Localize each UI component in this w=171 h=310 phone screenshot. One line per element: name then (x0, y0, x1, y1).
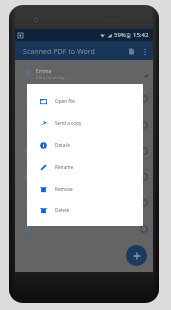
button[interactable]: Emma (15, 60, 153, 86)
staticText: Delete (55, 207, 70, 213)
staticText: Open file (55, 98, 75, 104)
staticText: 59% (114, 31, 126, 39)
button[interactable]: Details (27, 134, 143, 156)
button[interactable] (15, 112, 153, 138)
button[interactable]: Delete (27, 200, 143, 220)
button[interactable]: More options (138, 45, 151, 58)
staticText: Details (55, 142, 71, 148)
button[interactable]: Open file (27, 90, 143, 112)
staticText: Remove (55, 186, 73, 192)
staticText: Scanned PDF to Word (23, 46, 95, 56)
staticText: Emma (36, 67, 52, 74)
staticText: File is converting... (36, 75, 68, 80)
button[interactable]: My files (124, 44, 138, 58)
button[interactable] (15, 190, 153, 216)
button[interactable] (15, 164, 153, 190)
button[interactable] (15, 138, 153, 164)
button[interactable]: Remove (27, 178, 143, 200)
button[interactable] (15, 216, 153, 242)
button[interactable]: Send a copy (27, 112, 143, 134)
staticText: Send a copy (55, 120, 82, 126)
button[interactable]: Add (126, 245, 147, 266)
button[interactable] (15, 86, 153, 112)
staticText: Rename (55, 164, 74, 170)
staticText: 15:42 (133, 31, 149, 39)
button[interactable]: Rename (27, 156, 143, 178)
